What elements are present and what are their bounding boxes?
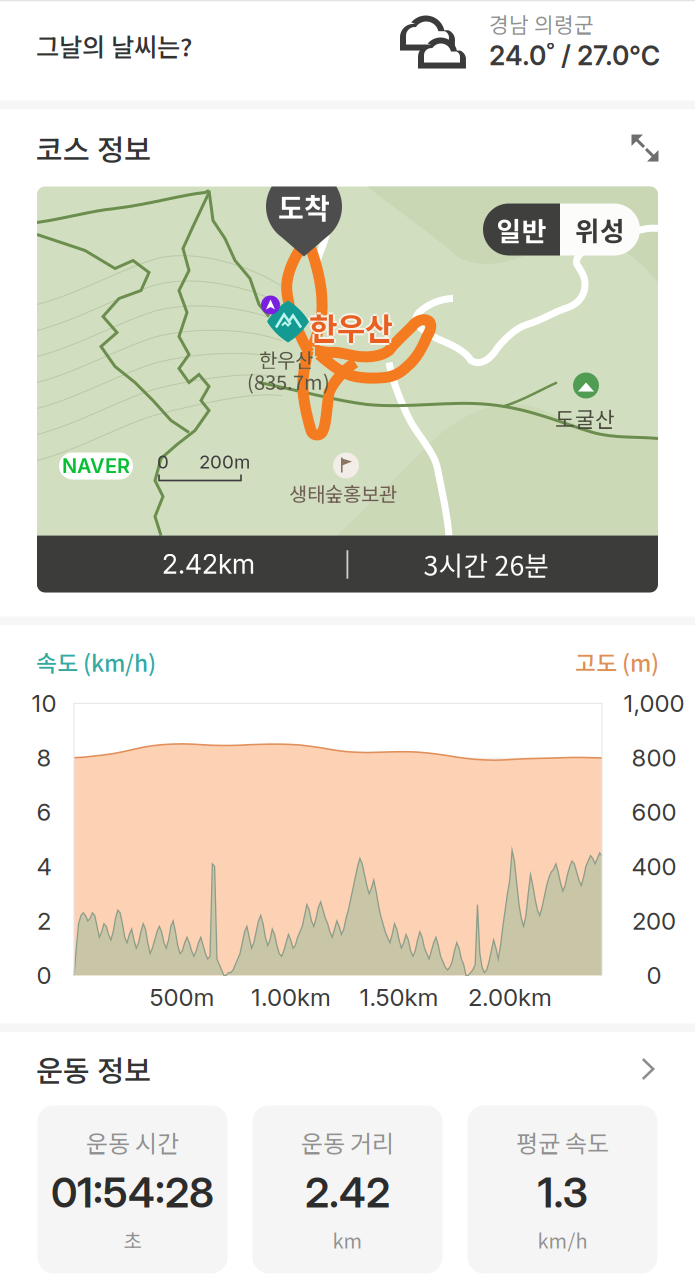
- staticText: 한우산: [259, 344, 313, 373]
- button[interactable]: 운동 시간: [37, 1105, 227, 1273]
- staticText: 한우산: [309, 304, 393, 349]
- staticText: 6: [36, 798, 51, 827]
- button[interactable]: 평균 속도: [467, 1105, 657, 1273]
- staticText: (835.7m): [247, 366, 330, 395]
- staticText: 1.50km: [359, 983, 438, 1012]
- staticText: 600: [631, 798, 676, 827]
- staticText: 1.3: [537, 1167, 587, 1217]
- staticText: 01:54:28: [51, 1167, 214, 1217]
- staticText: 한우산: [307, 304, 391, 349]
- button[interactable]: 운동 정보: [0, 1032, 695, 1105]
- staticText: 운동 정보: [36, 1048, 151, 1090]
- staticText: 초: [123, 1225, 141, 1254]
- staticText: 2.42km: [162, 548, 255, 580]
- staticText: 10: [31, 689, 56, 718]
- staticText: 한우산: [309, 306, 393, 351]
- staticText: 0: [157, 450, 169, 473]
- staticText: 2.00km: [468, 983, 552, 1012]
- staticText: 위성: [575, 210, 625, 249]
- button[interactable]: 그날의 날씨는?: [0, 1, 695, 100]
- staticText: 도착: [278, 186, 330, 227]
- button[interactable]: 운동 거리: [252, 1105, 442, 1273]
- staticText: 200m: [199, 450, 250, 473]
- staticText: 3시간 26분: [423, 545, 549, 583]
- staticText: 0: [36, 961, 51, 990]
- staticText: 한우산: [309, 302, 393, 347]
- staticText: 2.42: [305, 1167, 390, 1217]
- staticText: 8: [36, 743, 51, 772]
- staticText: 1.00km: [251, 983, 331, 1012]
- staticText: km/h: [537, 1225, 587, 1254]
- staticText: 800: [631, 743, 676, 772]
- staticText: km: [332, 1225, 362, 1254]
- staticText: 고도 (m): [575, 645, 659, 678]
- staticText: 200: [632, 906, 676, 935]
- staticText: 0: [646, 961, 661, 990]
- staticText: 그날의 날씨는?: [36, 27, 192, 64]
- staticText: NAVER: [62, 454, 130, 478]
- button[interactable]: Expand map: [631, 134, 659, 162]
- staticText: 경남 의령군: [489, 8, 594, 39]
- staticText: 운동 시간: [86, 1125, 179, 1159]
- staticText: 500m: [149, 983, 214, 1012]
- staticText: 생태숲홍보관: [289, 478, 397, 507]
- staticText: 2: [37, 906, 51, 935]
- staticText: 평균 속도: [516, 1125, 609, 1159]
- staticText: 코스 정보: [36, 127, 151, 169]
- staticText: 도굴산: [555, 402, 615, 433]
- staticText: 24.0˚ / 27.0℃: [489, 39, 660, 72]
- staticText: |: [343, 549, 351, 578]
- staticText: 일반: [496, 210, 546, 249]
- button[interactable]: 위성: [560, 203, 640, 255]
- staticText: 4: [36, 852, 51, 881]
- staticText: 운동 거리: [301, 1125, 394, 1159]
- staticText: 속도 (km/h): [36, 645, 156, 678]
- button[interactable]: 일반: [483, 203, 560, 255]
- staticText: 1,000: [623, 689, 684, 718]
- staticText: 400: [631, 852, 676, 881]
- staticText: 한우산: [311, 304, 395, 349]
